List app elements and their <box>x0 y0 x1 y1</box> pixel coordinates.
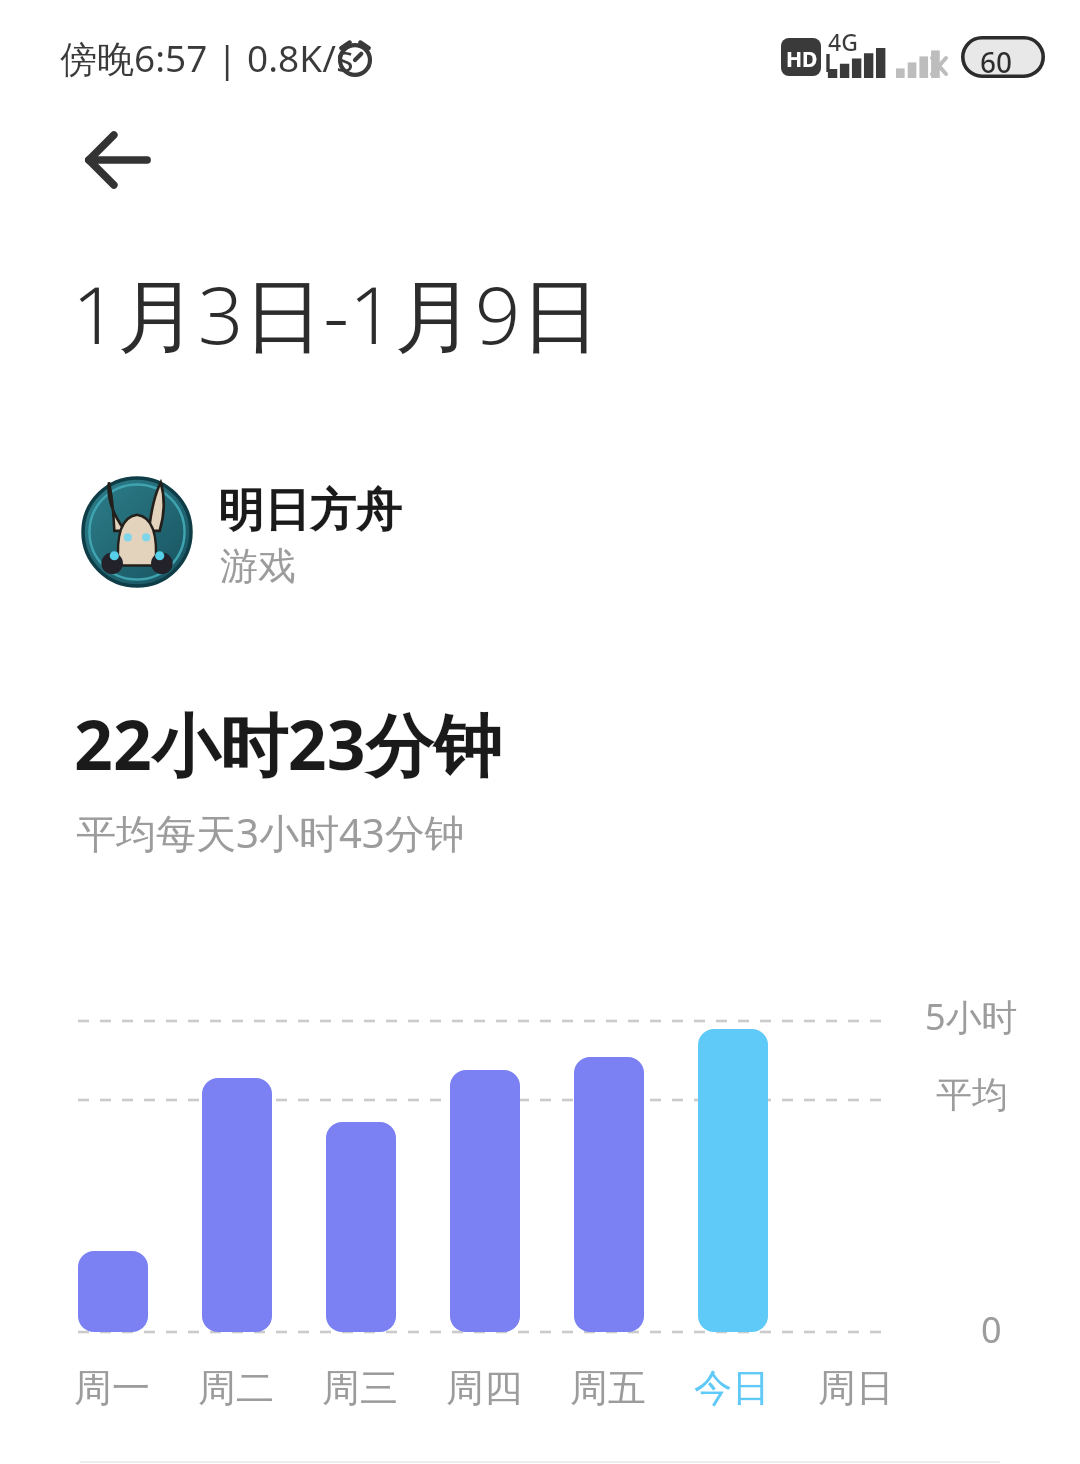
staticText: HD <box>786 45 818 74</box>
button[interactable] <box>202 1078 272 1332</box>
button[interactable]: 周二 <box>192 1360 282 1422</box>
staticText: 周五 <box>570 1364 646 1412</box>
staticText: 1月3日-1月9日 <box>72 258 601 367</box>
staticText: 5小时 <box>925 992 1018 1041</box>
button[interactable]: 周五 <box>564 1360 654 1422</box>
staticText: 明日方舟 <box>218 482 402 540</box>
button[interactable]: 周日 <box>812 1360 902 1422</box>
staticText: 周四 <box>446 1364 522 1412</box>
button[interactable] <box>326 1122 396 1332</box>
staticText: 周二 <box>198 1364 274 1412</box>
button[interactable] <box>574 1057 644 1332</box>
button[interactable]: Back <box>62 104 174 216</box>
button[interactable] <box>698 1029 768 1332</box>
button[interactable]: 周一 <box>68 1360 158 1422</box>
staticText: 4G <box>828 26 858 57</box>
staticText: 平均 <box>936 1072 1008 1117</box>
button[interactable]: 周四 <box>440 1360 530 1422</box>
staticText: 周三 <box>322 1364 398 1412</box>
staticText: 0 <box>981 1305 1002 1354</box>
button[interactable] <box>78 1251 148 1332</box>
staticText: 周一 <box>74 1364 150 1412</box>
button[interactable]: 今日 <box>688 1360 778 1422</box>
staticText: 60 <box>980 43 1013 81</box>
staticText: 游戏 <box>220 542 296 590</box>
staticText: 傍晚6:57 | 0.8K/s <box>60 32 354 83</box>
button[interactable]: 周三 <box>316 1360 406 1422</box>
button[interactable] <box>450 1070 520 1332</box>
staticText: 22小时23分钟 <box>74 697 502 790</box>
button[interactable]: 明日方舟 <box>70 466 550 598</box>
staticText: 周日 <box>818 1364 894 1412</box>
staticText: 平均每天3小时43分钟 <box>76 805 465 860</box>
staticText: 今日 <box>694 1364 770 1412</box>
